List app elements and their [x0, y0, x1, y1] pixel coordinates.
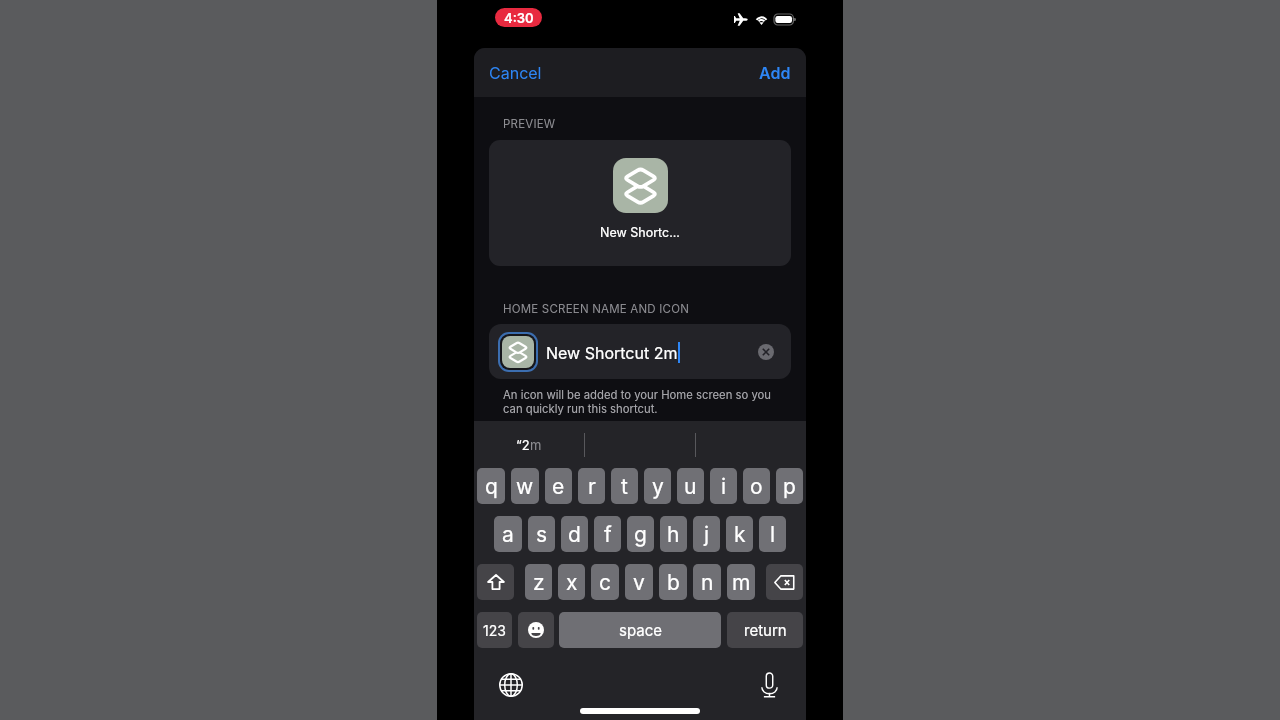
staticText: i: [721, 474, 727, 499]
button[interactable]: Clear text: [758, 344, 774, 360]
button[interactable]: h: [660, 516, 687, 552]
button[interactable]: v: [625, 564, 653, 600]
staticText: z: [533, 570, 545, 595]
button[interactable]: Dictate: [761, 672, 778, 698]
button[interactable]: space: [559, 612, 721, 648]
button[interactable]: d: [561, 516, 588, 552]
other: Delete: [774, 575, 795, 590]
button[interactable]: x: [558, 564, 585, 600]
other: Emoji: [528, 622, 544, 638]
button[interactable]: Shift: [477, 564, 514, 600]
button[interactable]: t: [611, 468, 638, 504]
button[interactable]: l: [759, 516, 786, 552]
button[interactable]: r: [578, 468, 605, 504]
button[interactable]: i: [710, 468, 737, 504]
staticText: l: [770, 522, 776, 547]
button[interactable]: f: [594, 516, 621, 552]
button[interactable]: o: [743, 468, 770, 504]
staticText: s: [536, 522, 548, 547]
staticText: e: [552, 474, 565, 499]
staticText: x: [566, 570, 578, 595]
button[interactable]: z: [525, 564, 552, 600]
staticText: v: [633, 570, 645, 595]
staticText: f: [604, 522, 612, 547]
staticText: b: [667, 570, 680, 595]
button[interactable]: q: [477, 468, 505, 504]
staticText: h: [667, 522, 680, 547]
button[interactable]: n: [693, 564, 721, 600]
staticText: w: [516, 474, 534, 499]
staticText: PREVIEW: [503, 117, 556, 131]
staticText: t: [621, 474, 628, 499]
other: Shift: [487, 574, 505, 590]
staticText: q: [485, 474, 498, 499]
button[interactable]: Delete: [766, 564, 803, 600]
staticText: u: [684, 474, 697, 499]
button[interactable]: e: [545, 468, 572, 504]
staticText: m: [530, 437, 542, 453]
button[interactable]: Emoji: [518, 612, 554, 648]
staticText: a: [502, 522, 514, 547]
staticText: New Shortcut 2m: [546, 343, 678, 362]
staticText: k: [734, 522, 746, 547]
button[interactable]: 123: [477, 612, 512, 648]
button[interactable]: New Shortcut 2m: [489, 324, 791, 379]
button[interactable]: c: [591, 564, 619, 600]
staticText: HOME SCREEN NAME AND ICON: [503, 302, 689, 316]
staticText: r: [588, 474, 596, 499]
staticText: 123: [483, 622, 506, 639]
button[interactable]: m: [727, 564, 755, 600]
staticText: 4:30: [504, 10, 534, 26]
staticText: New Shortc...: [600, 225, 680, 240]
button[interactable]: Cancel: [474, 53, 557, 92]
button[interactable]: Change keyboard: [499, 673, 523, 697]
button[interactable]: a: [494, 516, 522, 552]
staticText: space: [619, 621, 662, 639]
staticText: c: [599, 570, 611, 595]
button[interactable]: k: [726, 516, 753, 552]
button[interactable]: j: [693, 516, 720, 552]
button[interactable]: Add: [744, 53, 806, 92]
staticText: y: [652, 474, 664, 499]
button[interactable]: w: [511, 468, 539, 504]
staticText: d: [568, 522, 581, 547]
button[interactable]: b: [659, 564, 687, 600]
button[interactable]: u: [677, 468, 704, 504]
staticText: o: [750, 474, 763, 499]
button[interactable]: g: [627, 516, 654, 552]
button[interactable]: y: [644, 468, 671, 504]
staticText: p: [783, 474, 796, 499]
staticText: return: [744, 621, 787, 639]
button[interactable]: return: [727, 612, 803, 648]
button[interactable]: s: [528, 516, 555, 552]
staticText: m: [732, 570, 751, 595]
staticText: j: [704, 522, 710, 547]
staticText: g: [634, 522, 647, 547]
button[interactable]: p: [776, 468, 803, 504]
staticText: “2: [516, 437, 530, 453]
staticText: An icon will be added to your Home scree…: [503, 388, 772, 416]
staticText: Add: [759, 63, 791, 82]
staticText: Cancel: [489, 63, 542, 82]
staticText: n: [701, 570, 714, 595]
